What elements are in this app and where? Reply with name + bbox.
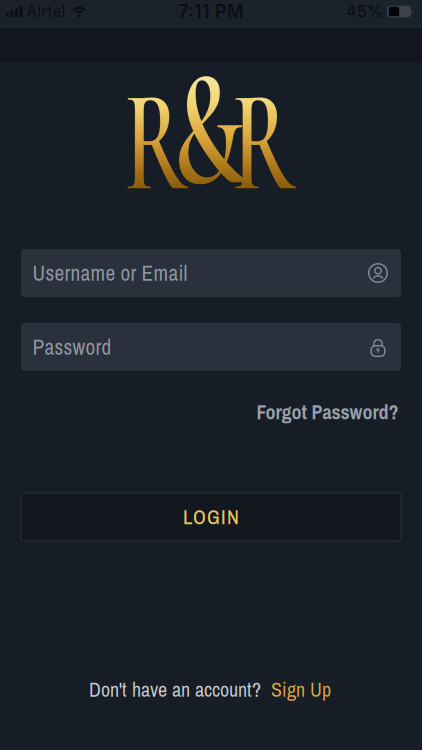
- button[interactable]: Password: [21, 323, 401, 371]
- button[interactable]: Forgot Password?: [256, 398, 398, 425]
- staticText: 7:11 PM: [178, 1, 244, 22]
- staticText: Password: [32, 333, 111, 361]
- staticText: LOGIN: [183, 503, 239, 530]
- staticText: Sign Up: [271, 676, 331, 703]
- button[interactable]: Sign Up: [271, 676, 331, 703]
- staticText: Username or Email: [32, 259, 187, 287]
- staticText: 45%: [346, 2, 383, 21]
- staticText: Don't have an account?: [89, 676, 261, 703]
- button[interactable]: LOGIN: [21, 493, 401, 541]
- staticText: Airtel: [26, 2, 65, 21]
- staticText: Forgot Password?: [256, 398, 398, 425]
- button[interactable]: Username or Email: [21, 249, 401, 297]
